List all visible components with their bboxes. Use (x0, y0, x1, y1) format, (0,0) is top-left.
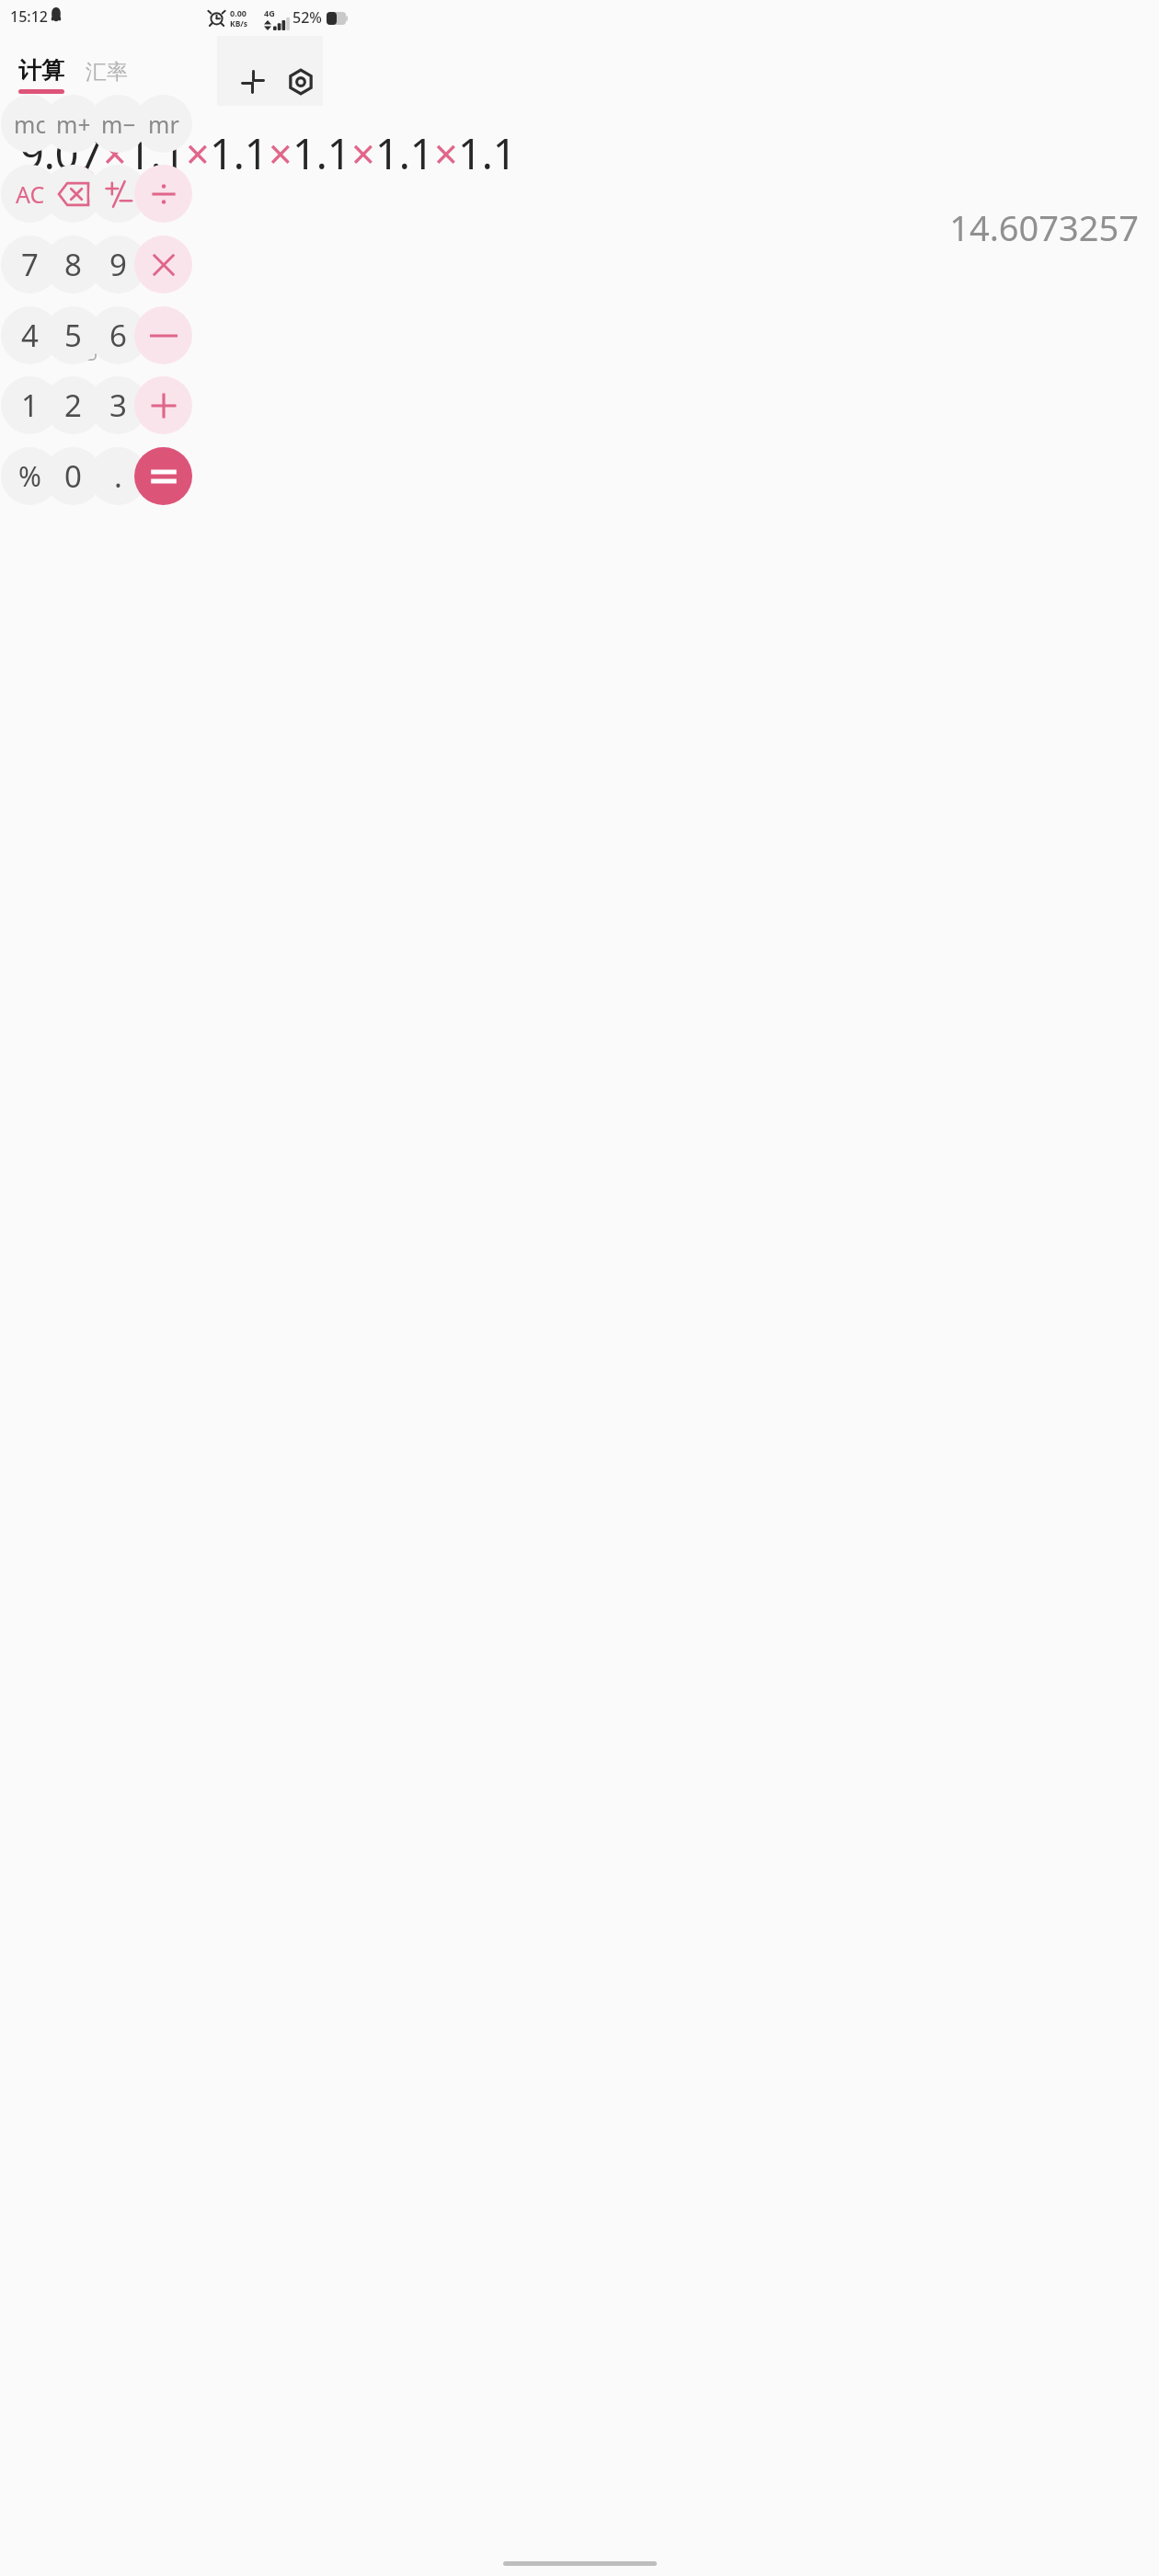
button[interactable]: 3 (89, 376, 147, 434)
staticText: 汇率 (86, 59, 128, 86)
staticText: 1.1 (375, 125, 434, 181)
staticText: 1.1 (293, 125, 351, 181)
button[interactable]: m+ (44, 95, 102, 153)
button[interactable]: % (1, 447, 59, 505)
button[interactable]: 0 (44, 447, 102, 505)
button[interactable]: Equals (134, 447, 192, 505)
staticText: m− (101, 109, 136, 140)
button[interactable]: mr (134, 95, 192, 153)
staticText: mc (14, 109, 47, 140)
button[interactable]: AC (1, 165, 59, 223)
button[interactable]: Divide (134, 165, 192, 223)
button[interactable]: 计算 (18, 56, 64, 94)
staticText: mr (148, 109, 179, 140)
staticText: 1.1 (210, 125, 269, 181)
button[interactable]: History (20, 330, 59, 369)
staticText: × (269, 125, 293, 181)
staticText: × (434, 125, 458, 181)
staticText: 15:12 (10, 6, 48, 27)
staticText: 2 (64, 385, 82, 426)
staticText: 14.6073257 (949, 203, 1139, 251)
staticText: × (351, 125, 375, 181)
button[interactable]: Subtract (134, 306, 192, 364)
staticText: 8 (64, 244, 82, 285)
button[interactable]: Toggle scientific keypad (228, 57, 278, 107)
staticText: × (186, 125, 210, 181)
staticText: 计算 (18, 56, 64, 85)
button[interactable]: m− (89, 95, 147, 153)
button[interactable]: 6 (89, 306, 147, 364)
staticText: m+ (56, 109, 91, 140)
button[interactable]: Settings (276, 57, 326, 107)
staticText: KB/s (230, 18, 248, 29)
button[interactable]: 7 (1, 236, 59, 293)
button[interactable]: 1 (1, 376, 59, 434)
staticText: 0 (64, 455, 82, 497)
staticText: 6 (109, 315, 127, 356)
staticText: 1 (21, 385, 39, 426)
staticText: 4 (21, 315, 39, 356)
button[interactable]: Multiply (134, 236, 192, 293)
staticText: 4G (264, 7, 275, 18)
button[interactable]: 汇率 (84, 57, 130, 87)
staticText: 5 (64, 315, 82, 356)
staticText: × (103, 125, 127, 181)
staticText: 3 (109, 385, 127, 426)
staticText: . (114, 455, 122, 497)
staticText: 52% (293, 7, 322, 28)
staticText: 1.1 (458, 125, 517, 181)
button[interactable]: mc (1, 95, 59, 153)
button[interactable]: 9 (89, 236, 147, 293)
button[interactable]: 4 (1, 306, 59, 364)
staticText: 0.00 (230, 7, 247, 18)
button[interactable]: Scientific functions (66, 330, 105, 369)
staticText: AC (16, 178, 45, 210)
staticText: % (18, 457, 41, 495)
staticText: 9.07 (20, 125, 103, 181)
button[interactable]: . (89, 447, 147, 505)
staticText: 1.1 (127, 125, 186, 181)
button[interactable]: Toggle sign (89, 165, 147, 223)
button[interactable]: Add (134, 376, 192, 434)
staticText: 9 (109, 244, 127, 285)
button[interactable]: 2 (44, 376, 102, 434)
button[interactable]: 5 (44, 306, 102, 364)
staticText: 7 (21, 244, 39, 285)
button[interactable]: 8 (44, 236, 102, 293)
button[interactable]: Backspace (44, 165, 102, 223)
